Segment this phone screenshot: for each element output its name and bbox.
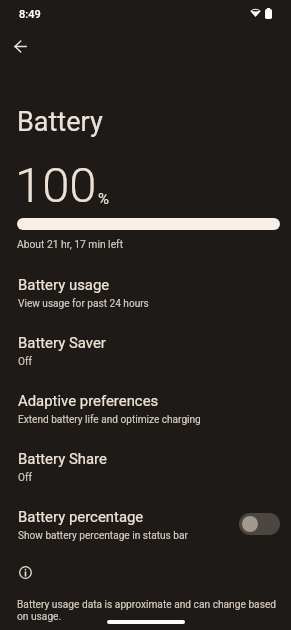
button[interactable]: Back: [6, 32, 34, 60]
staticText: View usage for past 24 hours: [18, 298, 149, 310]
staticText: Battery usage: [18, 276, 110, 293]
button[interactable]: Battery percentage toggle: [239, 513, 280, 535]
staticText: %: [98, 190, 109, 208]
other: Info: [19, 566, 32, 579]
button[interactable]: Adaptive preferences: [0, 382, 291, 440]
staticText: Show battery percentage in status bar: [18, 530, 188, 542]
button[interactable]: Battery usage: [0, 266, 291, 324]
staticText: Extend battery life and optimize chargin…: [18, 414, 201, 426]
staticText: Battery Saver: [18, 334, 106, 351]
staticText: on usage.: [17, 611, 62, 623]
staticText: 100: [15, 157, 97, 214]
staticText: About 21 hr, 17 min left: [17, 238, 124, 250]
staticText: Battery Share: [18, 450, 107, 467]
staticText: Battery percentage: [18, 508, 144, 525]
staticText: Off: [18, 472, 32, 484]
button[interactable]: Battery Share: [0, 440, 291, 498]
staticText: Battery usage data is approximate and ca…: [17, 599, 277, 611]
staticText: Adaptive preferences: [18, 392, 159, 409]
staticText: Battery: [17, 106, 103, 138]
button[interactable]: Battery Saver: [0, 324, 291, 382]
staticText: Off: [18, 356, 32, 368]
staticText: 8:49: [19, 8, 41, 21]
button[interactable]: Battery percentage: [0, 498, 291, 556]
